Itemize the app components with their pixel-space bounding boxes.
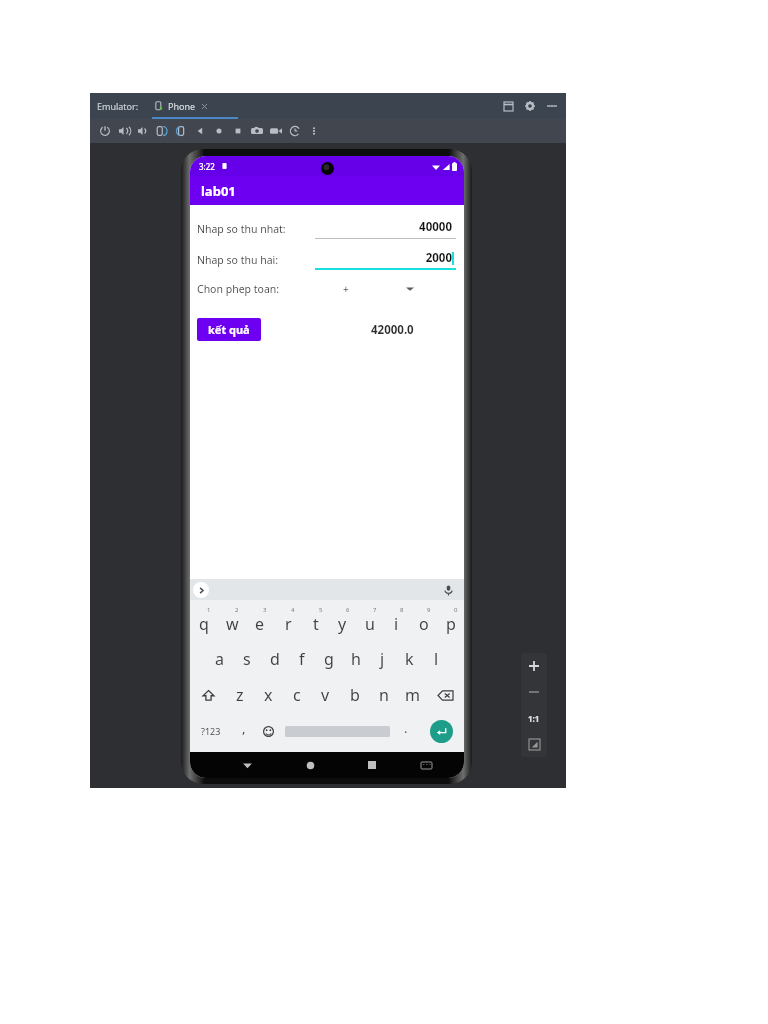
button[interactable]: Space [280, 715, 394, 747]
button[interactable]: Actual size [521, 705, 547, 731]
button[interactable]: Window [500, 98, 516, 114]
staticText: Nhap so thu hai: [197, 253, 307, 267]
button[interactable]: Enter [430, 720, 453, 743]
staticText: w [226, 613, 239, 635]
button[interactable]: Recents [341, 752, 403, 778]
button[interactable]: Overview [228, 120, 247, 142]
button[interactable]: m [398, 679, 427, 711]
button[interactable]: Screenshot [247, 120, 266, 142]
button[interactable]: Record [266, 120, 285, 142]
staticText: q [199, 613, 209, 635]
button[interactable]: j [369, 643, 396, 675]
staticText: 1:1 [528, 713, 540, 724]
staticText: f [299, 648, 305, 670]
staticText: 6 [346, 606, 350, 614]
button[interactable]: Volume down [133, 120, 152, 142]
button[interactable]: Emoji [256, 715, 280, 747]
staticText: j [380, 648, 385, 670]
staticText: Phone [168, 100, 196, 112]
button[interactable]: Fit to window [521, 731, 547, 757]
button[interactable]: More [304, 120, 323, 142]
staticText: 0 [454, 606, 458, 614]
button[interactable]: Backspace [427, 679, 464, 711]
button[interactable]: Hide keyboard [216, 752, 279, 778]
staticText: + [343, 282, 349, 296]
staticText: e [255, 613, 265, 635]
button[interactable]: Rotate right [171, 120, 190, 142]
button[interactable]: s [233, 643, 261, 675]
staticText: . [404, 719, 408, 737]
staticText: Nhap so thu nhat: [197, 222, 307, 236]
button[interactable]: h [342, 643, 369, 675]
button[interactable]: Back [190, 120, 209, 142]
button[interactable]: , [232, 715, 256, 747]
staticText: k [405, 648, 414, 670]
button[interactable]: x [254, 679, 282, 711]
button[interactable]: Zoom in [521, 653, 547, 679]
button[interactable]: Home [279, 752, 341, 778]
staticText: z [236, 684, 244, 706]
button[interactable]: Power [95, 120, 114, 142]
staticText: , [242, 719, 246, 737]
button[interactable]: v [311, 679, 340, 711]
button[interactable]: + [315, 279, 456, 299]
staticText: Emulator: [97, 100, 139, 112]
staticText: l [434, 648, 439, 670]
button[interactable]: a [205, 643, 233, 675]
button[interactable]: Switch keyboard [403, 752, 450, 778]
staticText: 42000.0 [371, 322, 414, 338]
staticText: Chon phep toan: [197, 282, 307, 296]
button[interactable]: f [288, 643, 315, 675]
button[interactable]: 1 [190, 605, 218, 639]
button[interactable]: 0 [437, 605, 464, 639]
staticText: 2 [235, 606, 239, 614]
button[interactable]: Voice input [440, 582, 456, 598]
button[interactable]: Shift [190, 679, 226, 711]
staticText: 1 [207, 606, 211, 614]
button[interactable]: kết quả [197, 318, 261, 341]
button[interactable]: 6 [329, 605, 356, 639]
button[interactable]: 2 [218, 605, 246, 639]
button[interactable]: c [282, 679, 311, 711]
button[interactable]: z [226, 679, 254, 711]
button[interactable]: k [396, 643, 423, 675]
staticText: i [394, 613, 399, 635]
button[interactable]: 4 [274, 605, 302, 639]
button[interactable]: 9 [410, 605, 437, 639]
staticText: lab01 [201, 182, 236, 200]
button[interactable]: Home [209, 120, 228, 142]
staticText: ?123 [201, 725, 221, 737]
staticText: r [285, 613, 292, 635]
button[interactable]: b [340, 679, 369, 711]
staticText: 40000 [315, 219, 452, 235]
staticText: kết quả [208, 322, 250, 337]
button[interactable]: 5 [302, 605, 329, 639]
button[interactable]: Volume up [114, 120, 133, 142]
button[interactable]: n [369, 679, 398, 711]
staticText: 3 [263, 606, 267, 614]
staticText: 4 [291, 606, 295, 614]
staticText: o [419, 613, 429, 635]
staticText: p [446, 613, 456, 635]
button[interactable]: Expand toolbar [193, 582, 209, 598]
button[interactable]: Minimize [544, 98, 560, 114]
button[interactable]: ?123 [190, 715, 232, 747]
button[interactable]: 3 [246, 605, 274, 639]
button[interactable]: . [394, 715, 418, 747]
button[interactable]: g [315, 643, 342, 675]
button[interactable]: d [261, 643, 288, 675]
button[interactable]: Settings [522, 98, 538, 114]
staticText: g [324, 648, 334, 670]
button[interactable]: Zoom out [521, 679, 547, 705]
button[interactable]: Rotate left [152, 120, 171, 142]
staticText: x [264, 684, 273, 706]
staticText: n [379, 684, 389, 706]
button[interactable]: 8 [383, 605, 410, 639]
staticText: b [350, 684, 360, 706]
staticText: 5 [319, 606, 323, 614]
staticText: 9 [427, 606, 431, 614]
button[interactable]: l [423, 643, 450, 675]
button[interactable]: 7 [356, 605, 383, 639]
staticText: y [338, 613, 347, 635]
button[interactable]: History [285, 120, 304, 142]
